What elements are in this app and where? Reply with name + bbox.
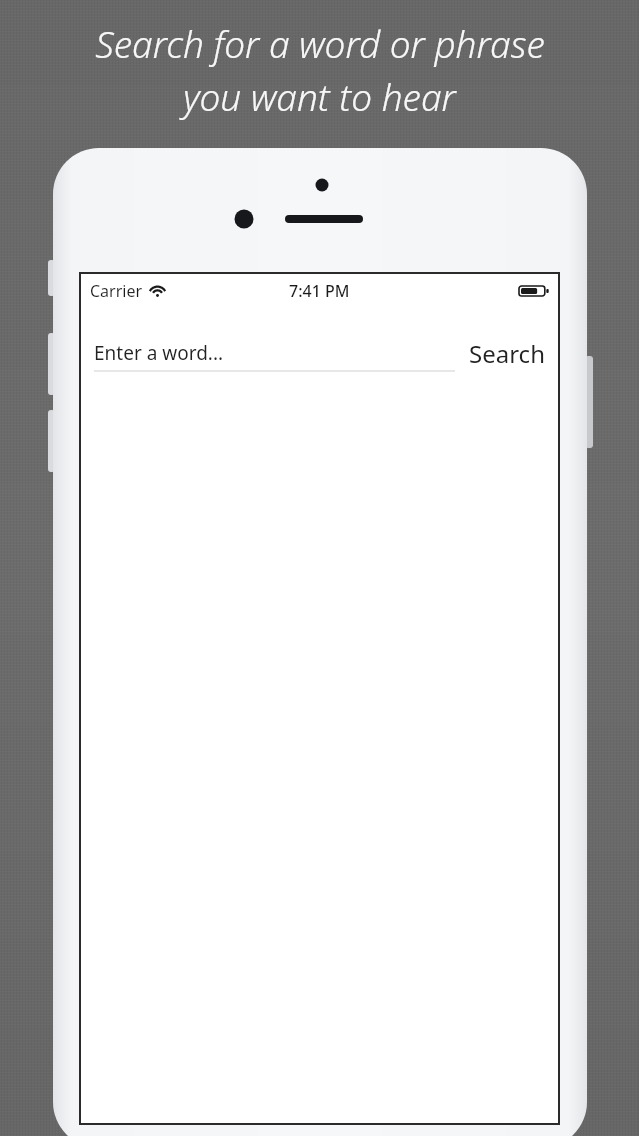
staticText: Search for a word or phrase [95,18,545,68]
button[interactable]: Search [467,335,547,372]
staticText: Carrier [90,280,143,302]
staticText: you want to hear [183,71,456,121]
button[interactable]: Enter a word... [94,340,455,372]
staticText: 7:41 PM [289,280,350,302]
staticText: Search [469,337,545,370]
staticText: Enter a word... [94,340,224,366]
